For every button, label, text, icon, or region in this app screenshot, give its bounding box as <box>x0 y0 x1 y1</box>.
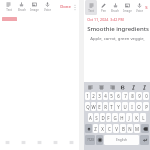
staticText: O <box>137 104 141 110</box>
staticText: Apple, carrot, green veggie, plain yogur… <box>87 36 148 42</box>
button[interactable]: Action 2 <box>19 138 28 147</box>
button[interactable]: 6 <box>115 92 121 100</box>
button[interactable]: J <box>126 113 132 122</box>
staticText: Image <box>30 8 39 12</box>
button[interactable]: 9 <box>136 92 142 100</box>
button[interactable]: S <box>94 113 99 122</box>
button[interactable]: A <box>88 113 93 122</box>
staticText: Done <box>60 4 71 10</box>
button[interactable]: Underline <box>140 83 148 91</box>
button[interactable]: B <box>120 124 126 133</box>
button[interactable]: Bold <box>118 83 126 91</box>
button[interactable]: More options <box>72 2 78 12</box>
staticText: Brush <box>111 9 119 13</box>
staticText: 3 <box>98 93 101 99</box>
staticText: 6 <box>117 93 120 99</box>
button[interactable]: Space <box>104 135 139 145</box>
button[interactable]: 7 <box>122 92 128 100</box>
button[interactable]: 8 <box>129 92 135 100</box>
staticText: B <box>122 126 125 132</box>
button[interactable]: Symbols <box>85 135 95 145</box>
button[interactable]: Brush <box>109 0 121 15</box>
button[interactable]: P <box>143 102 149 111</box>
button[interactable]: 1 <box>85 92 90 100</box>
staticText: F <box>107 115 110 121</box>
button[interactable]: I <box>129 102 135 111</box>
button[interactable]: Voice <box>41 0 54 14</box>
staticText: Voice <box>136 9 143 13</box>
button[interactable]: N <box>127 124 133 133</box>
button[interactable]: H <box>119 113 125 122</box>
button[interactable]: M <box>134 124 140 133</box>
button[interactable]: Text <box>85 0 97 15</box>
button[interactable]: U <box>122 102 128 111</box>
button[interactable]: W <box>91 102 96 111</box>
button[interactable]: Brush <box>15 0 28 14</box>
staticText: W <box>91 104 96 110</box>
button[interactable]: Align left <box>86 83 94 91</box>
staticText: Save <box>145 5 148 11</box>
staticText: I <box>131 104 133 110</box>
staticText: N <box>128 126 132 132</box>
button[interactable]: Enter <box>140 135 149 145</box>
button[interactable]: Action 1 <box>3 138 12 147</box>
button[interactable]: Action 4 <box>51 138 60 147</box>
button[interactable]: 2 <box>91 92 96 100</box>
button[interactable]: Shift <box>85 124 92 133</box>
button[interactable]: Backspace <box>141 124 149 133</box>
staticText: Voice <box>44 8 51 12</box>
button[interactable]: Q <box>85 102 90 111</box>
button[interactable]: Action 5 <box>67 138 76 147</box>
button[interactable]: Align center <box>97 83 105 91</box>
staticText: D <box>101 115 105 121</box>
button[interactable]: O <box>136 102 142 111</box>
button[interactable]: Text <box>2 0 15 14</box>
staticText: P <box>145 104 148 110</box>
staticText: H <box>120 115 124 121</box>
button[interactable]: F <box>106 113 111 122</box>
button[interactable]: L <box>140 113 146 122</box>
staticText: English <box>116 138 127 142</box>
button[interactable]: 0 <box>143 92 149 100</box>
button[interactable]: R <box>103 102 108 111</box>
button[interactable]: K <box>133 113 139 122</box>
button[interactable]: V <box>113 124 119 133</box>
staticText: M <box>135 126 139 132</box>
button[interactable]: T <box>109 102 114 111</box>
staticText: K <box>135 115 138 121</box>
staticText: Oct 11, 2024 3:42 PM <box>87 17 124 22</box>
button[interactable]: Voice <box>133 0 145 15</box>
button[interactable]: 5 <box>109 92 114 100</box>
button[interactable]: X <box>99 124 105 133</box>
staticText: C <box>108 126 111 132</box>
staticText: L <box>142 115 145 121</box>
button[interactable]: Align right <box>108 83 116 91</box>
staticText: Y <box>117 104 120 110</box>
button[interactable]: E <box>97 102 102 111</box>
staticText: A <box>89 115 92 121</box>
button[interactable]: 3 <box>97 92 102 100</box>
button[interactable]: Image <box>28 0 41 14</box>
button[interactable]: D <box>100 113 105 122</box>
button[interactable]: Y <box>115 102 121 111</box>
staticText: 9 <box>138 93 141 99</box>
staticText: Brush <box>18 8 26 12</box>
button[interactable]: G <box>112 113 118 122</box>
button[interactable]: Z <box>93 124 98 133</box>
staticText: V <box>115 126 118 132</box>
staticText: X <box>101 126 104 132</box>
button[interactable]: Image <box>121 0 133 15</box>
staticText: 0 <box>145 93 148 99</box>
button[interactable]: Action 3 <box>35 138 44 147</box>
staticText: Q <box>86 104 90 110</box>
button[interactable]: Italic <box>129 83 137 91</box>
button[interactable]: Settings <box>96 135 103 145</box>
staticText: T <box>110 104 113 110</box>
staticText: E <box>98 104 101 110</box>
button[interactable]: Save <box>145 5 149 11</box>
button[interactable]: Pen <box>97 0 109 15</box>
button[interactable]: C <box>106 124 112 133</box>
button[interactable]: Done <box>59 2 72 12</box>
staticText: Smoothie ingredients <box>87 25 149 33</box>
button[interactable]: 4 <box>103 92 108 100</box>
